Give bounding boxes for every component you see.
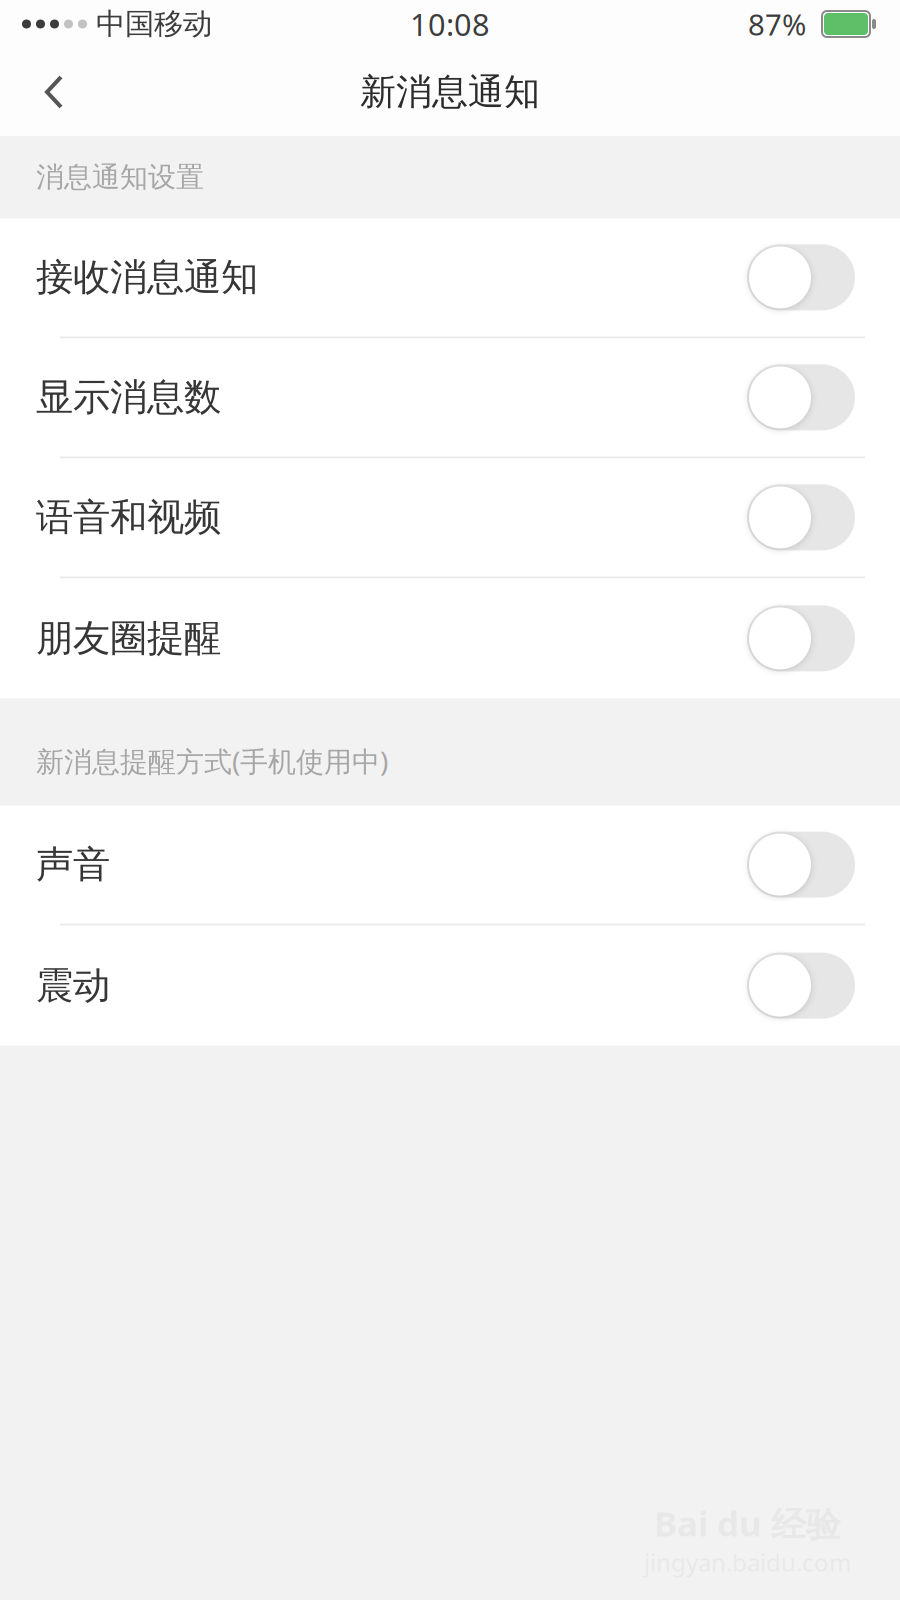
button[interactable]: 震动 [0, 926, 900, 1046]
staticText: 震动 [36, 963, 110, 1008]
staticText: 语音和视频 [36, 494, 221, 540]
staticText: 接收消息通知 [36, 254, 258, 300]
staticText: 朋友圈提醒 [36, 615, 221, 661]
staticText: 新消息通知 [360, 70, 540, 114]
staticText: 显示消息数 [36, 374, 221, 420]
staticText: 10:08 [410, 4, 490, 44]
staticText: 新消息提醒方式(手机使用中) [36, 742, 388, 780]
staticText: 87% [748, 4, 822, 43]
staticText: jingyan.baidu.com [644, 1546, 851, 1578]
staticText: 中国移动 [87, 6, 212, 42]
button[interactable]: 显示消息数 [0, 338, 900, 458]
staticText: 声音 [36, 842, 110, 887]
staticText: 消息通知设置 [36, 160, 204, 194]
button[interactable]: 语音和视频 [0, 458, 900, 578]
button[interactable]: 朋友圈提醒 [0, 578, 900, 698]
button[interactable]: 声音 [0, 806, 900, 926]
button[interactable]: Back [0, 48, 110, 136]
staticText: Bai du 经验 [654, 1500, 841, 1546]
button[interactable]: 接收消息通知 [0, 218, 900, 338]
